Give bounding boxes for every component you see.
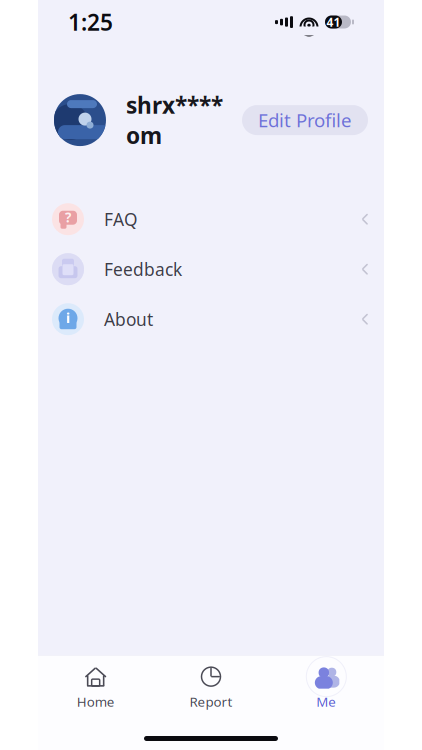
- button[interactable]: Feedback: [38, 244, 384, 294]
- button[interactable]: i: [38, 294, 384, 344]
- staticText: Report: [189, 693, 232, 710]
- staticText: i: [66, 308, 70, 327]
- button[interactable]: Home: [38, 657, 153, 719]
- staticText: shrx****om: [126, 90, 223, 150]
- staticText: Home: [77, 693, 115, 710]
- staticText: FAQ: [104, 208, 138, 231]
- staticText: Me: [316, 693, 336, 710]
- button[interactable]: Me: [269, 657, 384, 719]
- button[interactable]: Edit Profile: [242, 105, 368, 135]
- staticText: 1:25: [68, 7, 113, 37]
- staticText: 41: [326, 14, 340, 30]
- staticText: ?: [65, 208, 71, 226]
- button[interactable]: Report: [153, 657, 269, 719]
- staticText: Feedback: [104, 258, 182, 281]
- button[interactable]: ?: [38, 194, 384, 244]
- staticText: About: [104, 308, 153, 331]
- staticText: Edit Profile: [258, 108, 352, 132]
